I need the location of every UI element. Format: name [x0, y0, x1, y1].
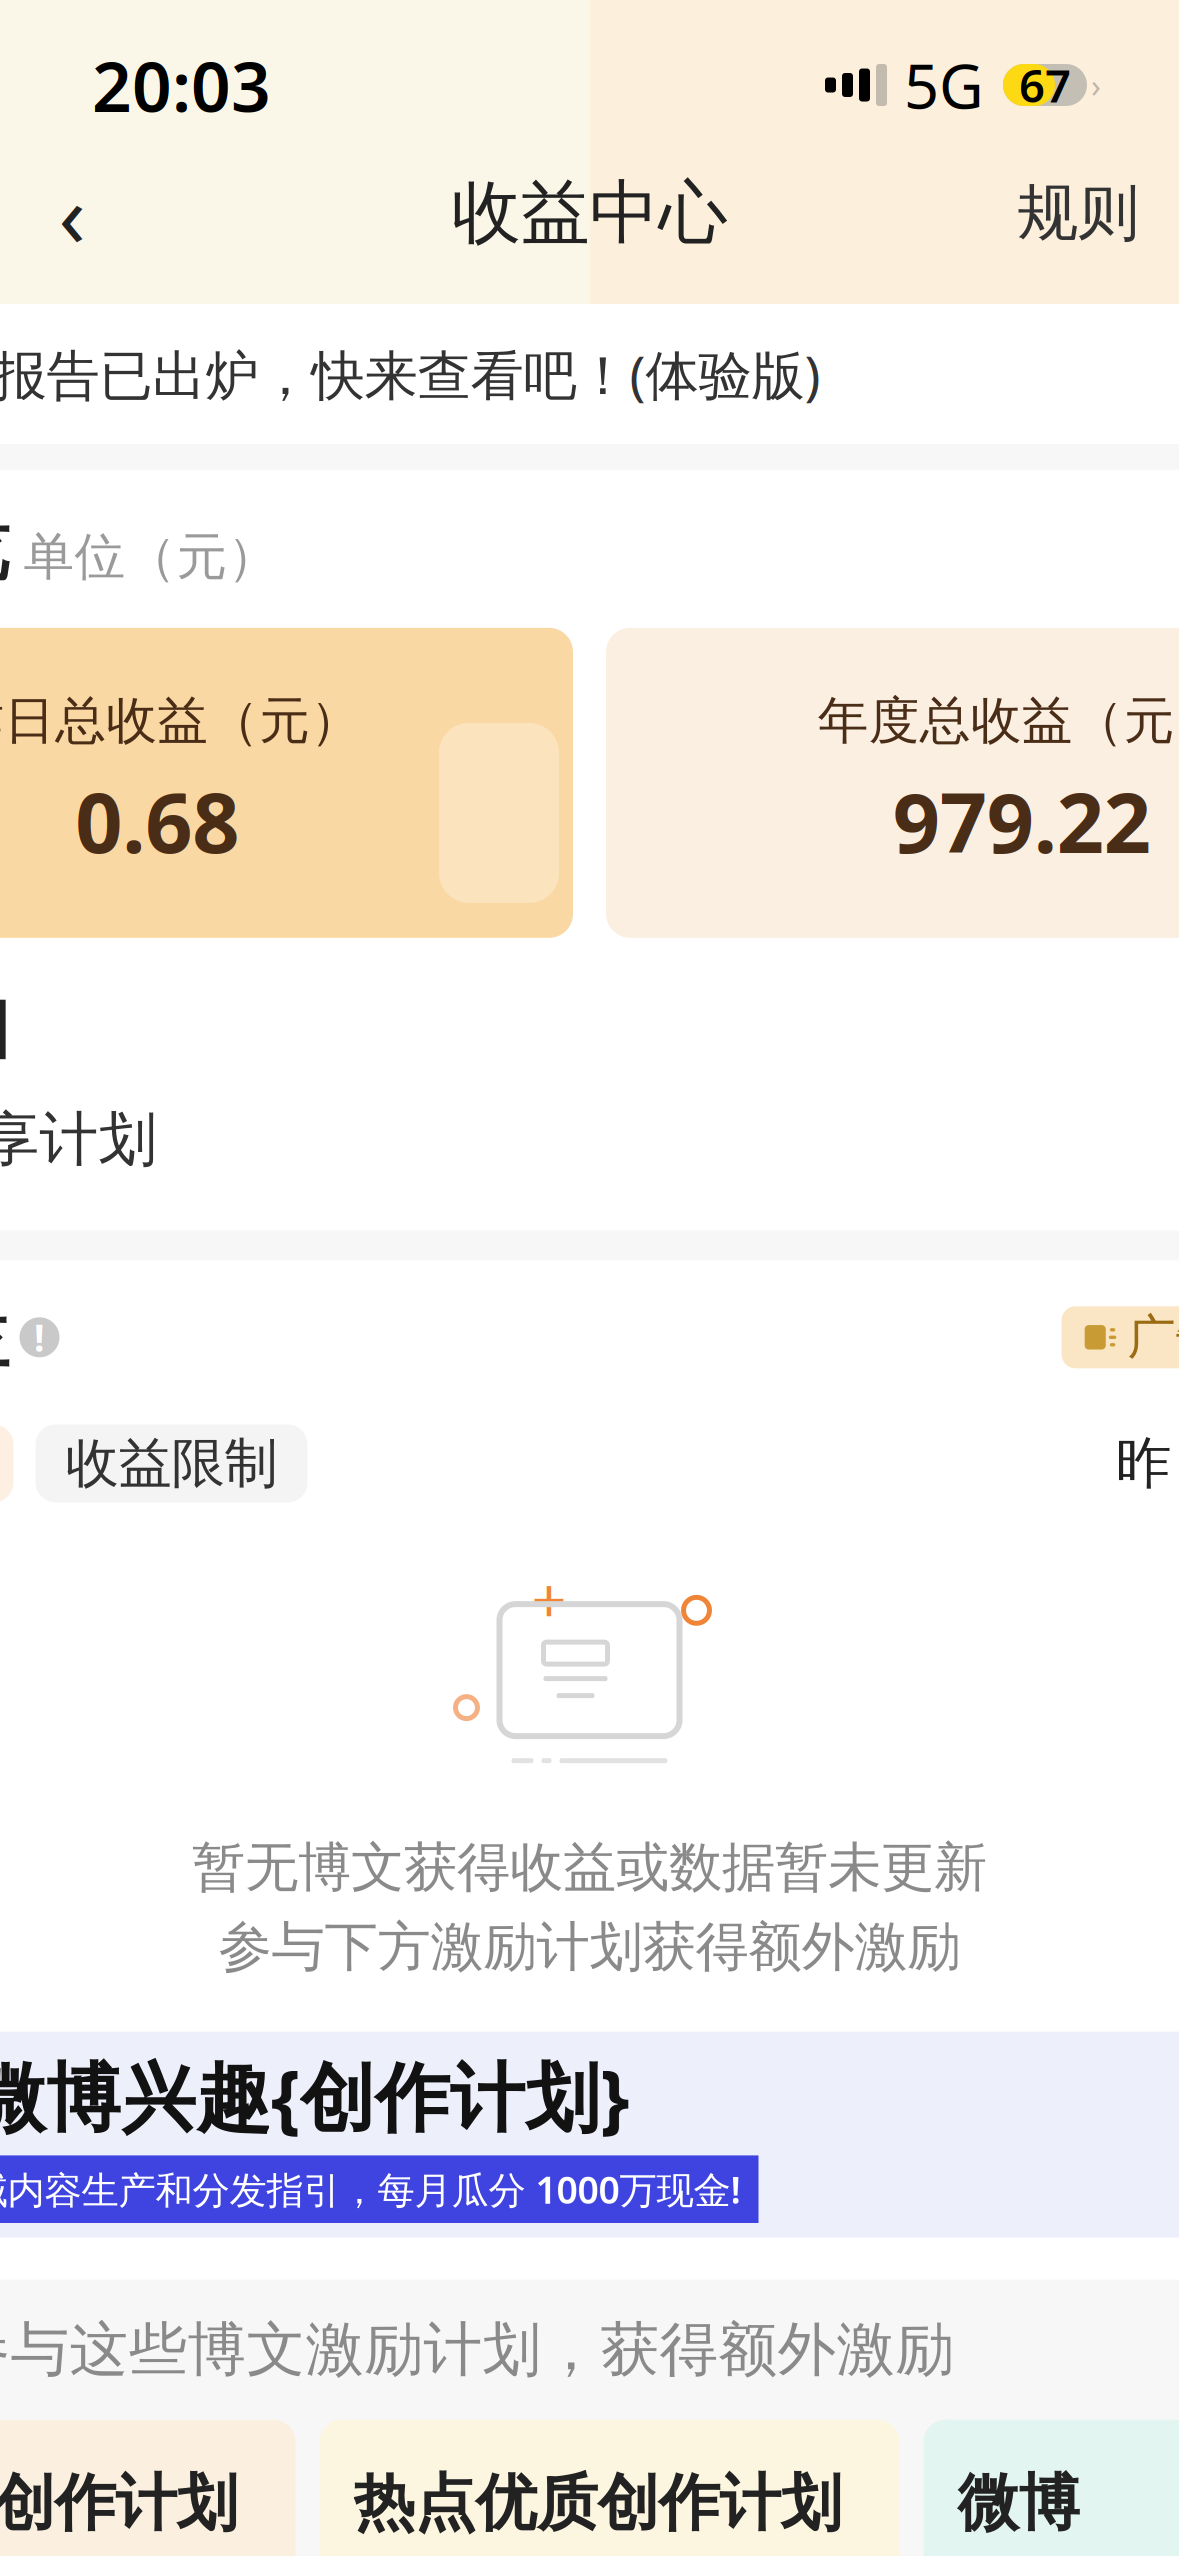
- staticText: ‹: [58, 155, 85, 271]
- staticText: 8月收益报告已出炉，快来查看吧！(体验版): [0, 339, 820, 409]
- button[interactable]: 昨日: [1103, 1415, 1179, 1512]
- staticText: 收益中心: [451, 170, 727, 256]
- staticText: 979.22: [893, 766, 1151, 876]
- staticText: 推出公域内容生产和分发指引，每月瓜分 1000万现金!: [0, 2164, 740, 2214]
- staticText: 收益总览: [0, 510, 9, 592]
- staticText: 参与下方激励计划获得额外激励: [218, 1914, 960, 1980]
- staticText: 渠道明细: [0, 988, 9, 1070]
- staticText: 收益限制: [65, 1431, 277, 1496]
- staticText: 67: [1019, 55, 1071, 115]
- button[interactable]: 微博兴趣创作计划: [0, 2420, 295, 2556]
- button[interactable]: 热点优质创作计划: [319, 2420, 899, 2556]
- staticText: 你还可以参与这些博文激励计划，获得额外激励: [0, 2314, 954, 2386]
- button[interactable]: 收益激励: [0, 1424, 13, 1502]
- staticText: 规则: [1017, 175, 1139, 251]
- staticText: ›: [1091, 64, 1101, 106]
- staticText: 0.68: [75, 766, 239, 876]
- staticText: 微博兴趣创作计划: [0, 2466, 237, 2541]
- staticText: 单位（元）: [23, 526, 278, 588]
- button[interactable]: 收益限制: [35, 1424, 307, 1502]
- staticText: 微博兴趣{创作计划}: [0, 2046, 629, 2145]
- staticText: 博文收益: [0, 1296, 9, 1378]
- staticText: 20:03: [92, 39, 271, 131]
- staticText: 昨日: [1115, 1429, 1179, 1498]
- button[interactable]: 返回: [22, 163, 122, 263]
- staticText: +: [531, 1559, 566, 1640]
- button[interactable]: 广告共享计划: [0, 1084, 1179, 1194]
- staticText: 5G: [904, 44, 984, 126]
- staticText: 微博: [957, 2466, 1079, 2541]
- staticText: !: [34, 1312, 45, 1362]
- button[interactable]: 微博兴趣{创作计划}: [0, 2032, 1179, 2238]
- button[interactable]: 说明: [9, 1307, 69, 1367]
- staticText: 年度总收益（元）: [818, 690, 1179, 752]
- button[interactable]: 微博: [923, 2420, 1179, 2556]
- staticText: 广告共享计划: [0, 1103, 157, 1175]
- button[interactable]: 规则: [999, 155, 1157, 271]
- staticText: 昨日总收益（元）: [0, 690, 361, 752]
- staticText: 广告共享计划: [1127, 1308, 1179, 1367]
- staticText: 热点优质创作计划: [353, 2466, 841, 2541]
- button[interactable]: 广告共享计划: [1061, 1306, 1179, 1368]
- staticText: 暂无博文获得收益或数据暂未更新: [192, 1835, 987, 1900]
- button[interactable]: 8月收益报告已出炉，快来查看吧！(体验版): [0, 304, 1179, 444]
